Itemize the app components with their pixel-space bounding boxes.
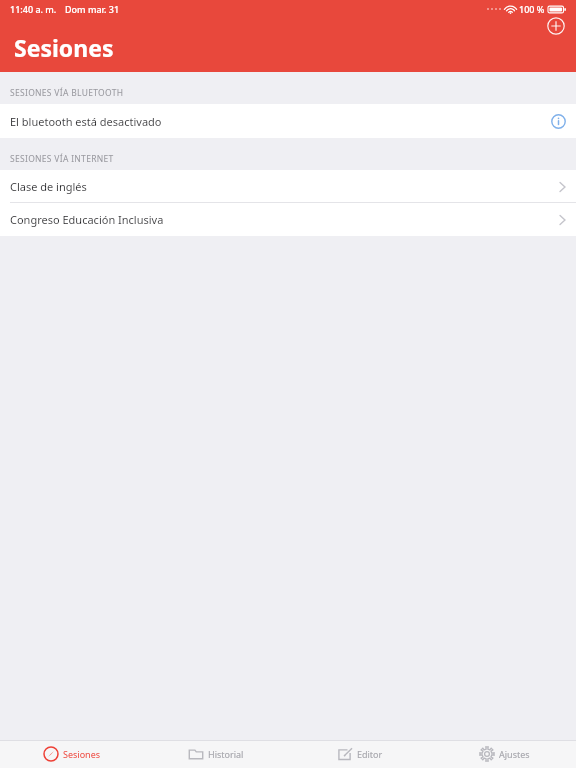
button[interactable]: Nueva sesión: [544, 14, 568, 38]
staticText: Clase de inglés: [10, 179, 87, 194]
staticText: Dom mar. 31: [65, 3, 120, 15]
staticText: Historial: [208, 748, 244, 760]
staticText: Sesiones: [14, 32, 114, 63]
staticText: Ajustes: [499, 748, 530, 760]
staticText: Sesiones: [63, 748, 101, 760]
staticText: El bluetooth está desactivado: [10, 114, 162, 129]
button[interactable]: Sesiones: [0, 740, 144, 768]
staticText: 11:40 a. m.: [10, 3, 57, 15]
staticText: SESIONES VÍA BLUETOOTH: [10, 87, 124, 99]
staticText: 100 %: [519, 3, 545, 15]
button[interactable]: Información: [549, 112, 567, 130]
staticText: Congreso Educación Inclusiva: [10, 212, 164, 227]
button[interactable]: Congreso Educación Inclusiva: [0, 203, 576, 236]
button[interactable]: El bluetooth está desactivado: [0, 104, 576, 138]
button[interactable]: Clase de inglés: [0, 170, 576, 203]
staticText: Editor: [357, 748, 383, 760]
button[interactable]: Ajustes: [432, 740, 576, 768]
staticText: SESIONES VÍA INTERNET: [10, 153, 114, 165]
button[interactable]: Historial: [144, 740, 288, 768]
button[interactable]: Editor: [288, 740, 432, 768]
